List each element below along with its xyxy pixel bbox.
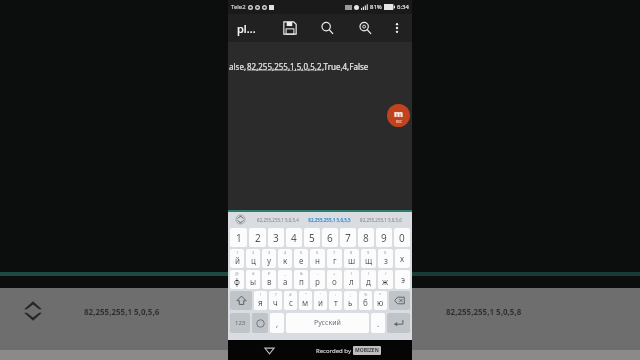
button[interactable]: More options [385,16,409,40]
button[interactable]: х [395,249,410,268]
button[interactable]: 6 [322,228,338,247]
button[interactable]: / [378,270,393,289]
button[interactable]: 8 [344,249,359,268]
button[interactable]: Expand suggestions [228,212,252,227]
button[interactable]: 82,255,255,1 5,0,5,4 [252,212,304,227]
button[interactable]: 0 [394,228,410,247]
staticText: * [379,292,382,297]
staticText: ; [350,292,352,297]
button[interactable]: + [327,270,342,289]
staticText: ? [275,292,277,297]
staticText: 7 [333,250,336,255]
staticText: 0 [384,250,387,255]
button[interactable]: 3 [268,228,284,247]
staticText: 9 [367,250,370,255]
button[interactable]: Backspace [389,291,410,310]
button[interactable]: Search [314,15,340,41]
button[interactable]: 7 [340,228,356,247]
button[interactable]: 9 [376,228,392,247]
staticText: р [315,276,320,287]
button[interactable]: ₽ [262,270,276,289]
button[interactable]: ' [314,291,327,310]
button[interactable]: _ [278,270,292,289]
button[interactable]: 1 [230,249,244,268]
button[interactable]: ( [344,270,359,289]
button[interactable]: * [374,291,387,310]
staticText: д [366,276,371,287]
button[interactable]: & [294,270,308,289]
button[interactable]: 4 [286,228,302,247]
staticText: 8 [363,231,369,245]
staticText: я [258,297,263,308]
button[interactable]: 82,255,255,1 5,0,5,5 [304,212,355,227]
button[interactable]: % [359,291,372,310]
staticText: 2 [252,250,255,255]
button[interactable]: 123 [230,313,250,333]
staticText: п [299,276,304,287]
staticText: 4 [291,231,297,245]
staticText: ч [273,297,278,308]
staticText: 3 [268,250,271,255]
staticText: г [333,255,337,266]
button[interactable]: 8 [358,228,374,247]
staticText: 5 [309,231,315,245]
button[interactable]: ! [254,291,267,310]
button[interactable]: Hide keyboard [260,341,278,359]
button[interactable]: 1 [230,228,247,247]
button[interactable]: Emoji [252,313,268,333]
button[interactable]: 5 [294,249,308,268]
staticText: н [315,255,320,266]
staticText: m [394,107,404,119]
button[interactable]: - [310,270,325,289]
button[interactable]: Shift [230,291,252,310]
staticText: т [334,297,338,308]
staticText: Recorded by [316,347,351,355]
staticText: 4 [284,250,287,255]
staticText: ) [368,271,370,276]
button[interactable]: 4 [278,249,292,268]
button[interactable]: Русский [286,313,369,333]
staticText: Русский [314,318,341,328]
button[interactable]: ) [361,270,376,289]
staticText: щ [365,255,373,266]
staticText: а [283,276,288,287]
staticText: й [235,255,240,266]
button[interactable]: ; [344,291,357,310]
staticText: ы [250,276,257,287]
staticText: 123 [235,319,246,327]
button[interactable]: " [299,291,312,310]
staticText: 8 [350,250,353,255]
staticText: 9 [381,231,387,245]
button[interactable]: 7 [327,249,342,268]
button[interactable]: 3 [262,249,276,268]
button[interactable]: 9 [361,249,376,268]
staticText: к [283,255,288,266]
button[interactable]: # [284,291,297,310]
staticText: ' [320,292,321,297]
button[interactable]: @ [230,270,244,289]
staticText: 82,255,255,1 5,0,5,6 [360,217,402,223]
button[interactable]: 5 [304,228,320,247]
button[interactable]: : [329,291,342,310]
button[interactable]: Enter [387,313,410,333]
staticText: э [401,274,405,285]
button[interactable]: # [246,270,260,289]
staticText: + [333,271,336,276]
button[interactable]: 2 [246,249,260,268]
button[interactable]: . [371,313,385,333]
button[interactable]: 0 [378,249,393,268]
staticText: ф [234,276,240,287]
button[interactable]: 6 [310,249,325,268]
button[interactable]: pl... [234,17,259,40]
button[interactable]: ? [269,291,282,310]
button[interactable]: 82,255,255,1 5,0,5,6 [355,212,406,227]
staticText: ( [351,271,353,276]
button[interactable]: э [395,270,410,289]
button[interactable]: , [270,313,284,333]
staticText: ₽ [268,271,271,276]
button[interactable]: 2 [249,228,266,247]
staticText: 2 [255,231,261,245]
button[interactable]: Zoom search [352,15,378,41]
button[interactable]: Save [277,15,303,41]
staticText: " [305,292,307,297]
